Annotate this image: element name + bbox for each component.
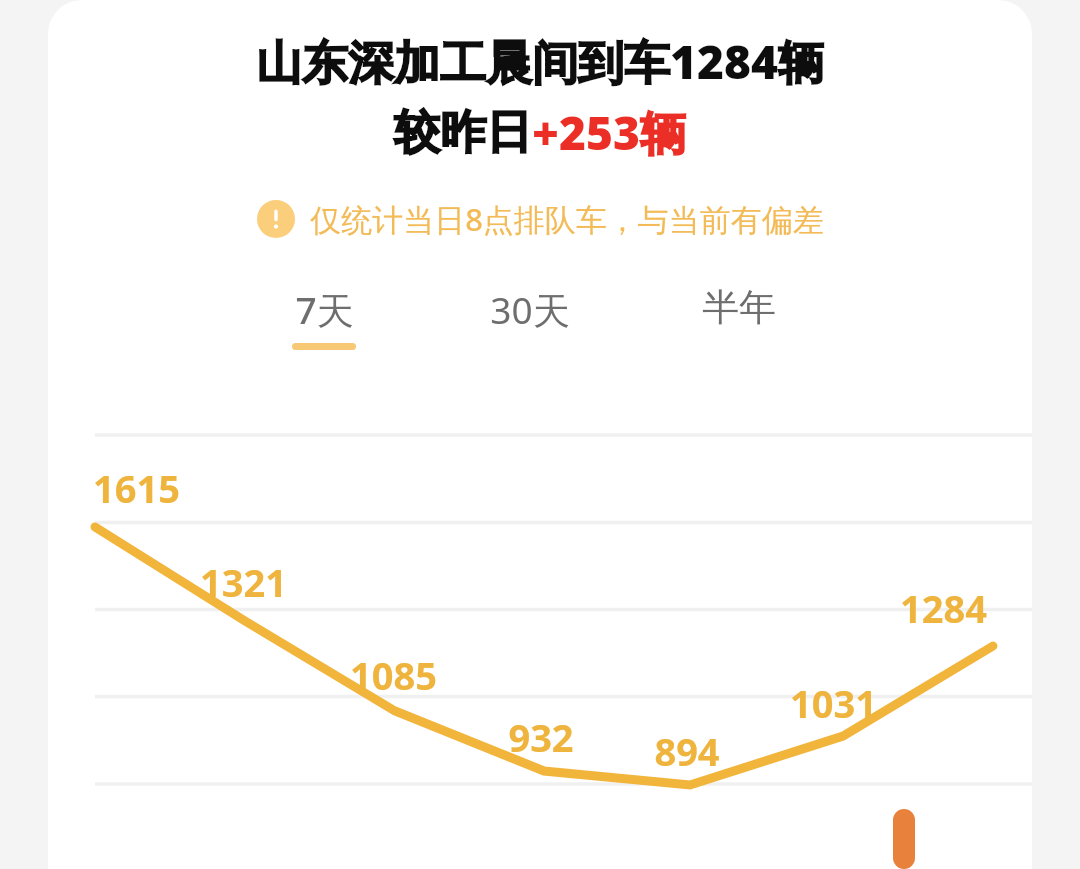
staticText: 932 [508,711,574,763]
other: 提示 [257,200,295,238]
staticText: 1031 [790,677,877,729]
staticText: 1284 [900,582,987,634]
staticText: 1615 [93,462,180,514]
button[interactable]: 30天 [484,282,576,352]
staticText: 894 [654,725,720,777]
staticText: 7天 [295,284,354,335]
staticText: 较昨日 [394,104,532,162]
staticText: 仅统计当日8点排队车，与当前有偏差 [310,198,824,240]
staticText: 半年 [702,284,776,331]
staticText: 30天 [490,284,570,335]
staticText: 1085 [350,649,437,701]
staticText: +253辆 [532,101,686,164]
staticText: 山东深加工晨间到车1284辆 [48,30,1032,93]
button[interactable]: 半年 [696,282,782,348]
button[interactable]: 7天 [286,282,362,352]
staticText: 1321 [200,556,287,608]
